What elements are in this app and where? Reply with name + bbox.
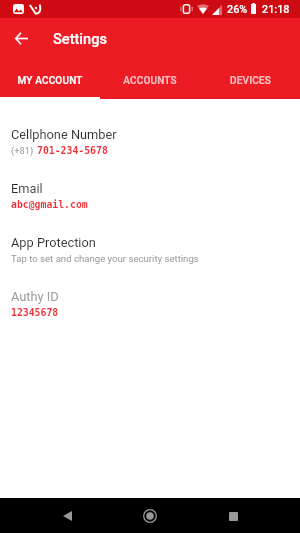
staticText: (+81): [11, 145, 34, 156]
button[interactable]: MY ACCOUNT: [0, 62, 100, 99]
staticText: 26%: [227, 3, 248, 16]
button[interactable]: Navigate up: [0, 17, 42, 59]
staticText: ACCOUNTS: [123, 75, 177, 87]
button[interactable]: Back: [50, 499, 84, 533]
button[interactable]: DEVICES: [200, 62, 300, 99]
button[interactable]: Cellphone Number: [0, 127, 300, 156]
staticText: Authy ID: [11, 289, 59, 304]
button[interactable]: Home: [133, 499, 167, 533]
staticText: 21:18: [262, 3, 290, 16]
staticText: Tap to set and change your security sett…: [11, 253, 199, 264]
button[interactable]: Recent apps: [216, 499, 250, 533]
staticText: abc@gmail.com: [11, 199, 88, 210]
staticText: 701-234-5678: [37, 145, 108, 156]
button[interactable]: App Protection: [0, 235, 300, 264]
staticText: App Protection: [11, 235, 96, 250]
button[interactable]: ACCOUNTS: [100, 62, 200, 99]
staticText: Email: [11, 181, 43, 196]
staticText: DEVICES: [230, 75, 271, 87]
button[interactable]: Email: [0, 181, 300, 210]
staticText: MY ACCOUNT: [17, 75, 83, 87]
button[interactable]: Authy ID: [0, 289, 300, 318]
staticText: Cellphone Number: [11, 127, 117, 142]
staticText: 12345678: [11, 307, 59, 318]
staticText: Settings: [53, 30, 108, 47]
